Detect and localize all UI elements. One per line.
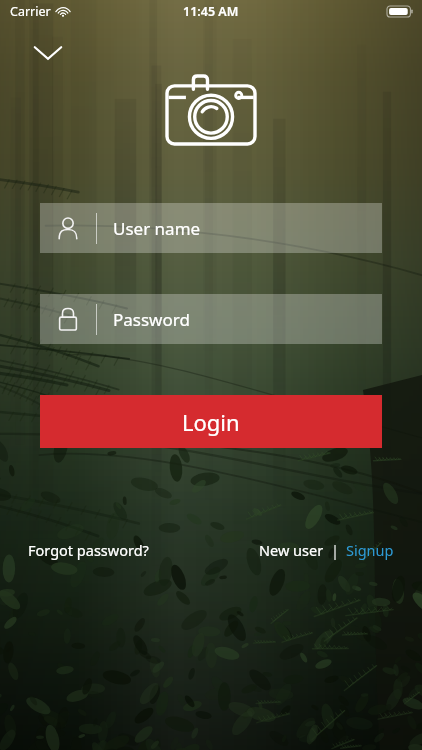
staticText: Forgot password?: [28, 540, 149, 560]
staticText: Password: [113, 308, 190, 331]
button[interactable]: Signup: [346, 540, 394, 560]
staticText: Carrier: [10, 3, 51, 20]
button[interactable]: Forgot password?: [28, 540, 149, 560]
button[interactable]: Login: [40, 395, 382, 448]
button[interactable]: User name: [40, 203, 382, 253]
button[interactable]: Password: [40, 294, 382, 344]
button[interactable]: Collapse: [33, 42, 63, 64]
staticText: |: [331, 540, 339, 560]
staticText: Signup: [346, 540, 394, 560]
staticText: User name: [113, 217, 201, 240]
staticText: 11:45 AM: [183, 3, 239, 20]
staticText: New user: [259, 540, 324, 560]
staticText: Login: [182, 407, 240, 437]
